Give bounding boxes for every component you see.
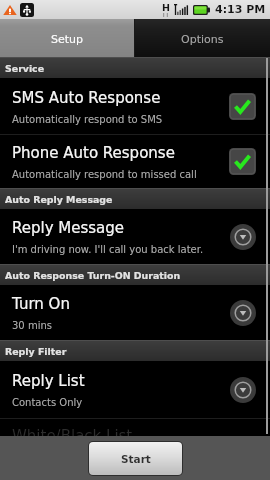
staticText: Turn On [12,295,70,312]
button[interactable]: Setup [0,19,134,57]
staticText: SMS Auto Response [12,89,161,106]
button[interactable]: Phone Auto Response [0,135,270,188]
staticText: 4:13 PM [215,3,266,16]
staticText: Automatically respond to missed call [12,169,197,181]
button[interactable]: Toggle [229,93,256,120]
staticText: Start [121,453,151,465]
button[interactable]: SMS Auto Response [0,78,270,134]
button[interactable]: Expand [230,300,256,326]
button[interactable]: Expand [230,377,256,403]
button[interactable]: Start [89,442,182,475]
staticText: Reply Filter [5,346,67,357]
button[interactable]: Options [135,19,270,57]
button[interactable]: Reply Message [0,209,270,264]
staticText: White/Black List [12,427,133,436]
staticText: Reply Message [12,219,125,236]
staticText: Setup [51,33,84,46]
button[interactable]: Turn On [0,285,270,340]
button[interactable]: Toggle [229,148,256,175]
staticText: Reply List [12,372,85,389]
button[interactable]: Reply List [0,361,270,418]
staticText: Phone Auto Response [12,144,175,161]
staticText: Service [5,63,45,74]
staticText: Options [181,33,224,46]
staticText: Automatically respond to SMS [12,114,163,126]
staticText: I'm driving now. I'll call you back late… [12,244,204,256]
button[interactable]: Expand [230,224,256,250]
staticText: Auto Response Turn-ON Duration [5,270,181,281]
staticText: 30 mins [12,320,52,332]
staticText: Auto Reply Message [5,194,113,205]
staticText: H [162,2,170,13]
staticText: Contacts Only [12,397,83,409]
